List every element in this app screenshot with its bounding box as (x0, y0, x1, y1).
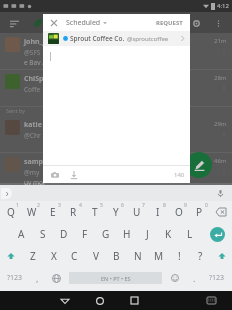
staticText: @sproutcoffee (127, 35, 169, 43)
button[interactable]: Logo (31, 16, 45, 30)
button[interactable]: Settings (189, 16, 203, 30)
staticText: REQUEST (156, 19, 183, 27)
button[interactable]: R (63, 201, 84, 223)
button[interactable]: K (158, 223, 179, 245)
button[interactable]: samp (0, 153, 232, 189)
button[interactable]: I (147, 201, 168, 223)
button[interactable]: Change language (45, 267, 67, 289)
staticText: T (92, 205, 98, 219)
staticText: 4:12 (217, 2, 229, 10)
button[interactable]: Shift (0, 245, 22, 267)
button[interactable]: REQUEST (154, 17, 185, 29)
button[interactable]: Y (105, 201, 126, 223)
button[interactable]: M (148, 245, 169, 267)
staticText: @SFS (24, 48, 41, 57)
button[interactable]: Z (22, 245, 43, 267)
button[interactable]: P (189, 201, 210, 223)
staticText: samp (24, 157, 43, 167)
button[interactable]: Home (82, 291, 117, 310)
button[interactable]: ? (190, 245, 211, 267)
staticText: uy mor (24, 178, 46, 185)
button[interactable]: ! (169, 245, 190, 267)
staticText: ChiSp (24, 74, 44, 84)
button[interactable]: Close (48, 17, 60, 29)
button[interactable]: T (84, 201, 105, 223)
button[interactable]: Emoji (164, 267, 186, 289)
staticText: P (196, 205, 203, 219)
staticText: O (175, 205, 183, 219)
staticText: G (102, 227, 110, 241)
staticText: M (154, 249, 164, 263)
staticText: . (193, 272, 196, 284)
button[interactable]: Shift right (211, 245, 232, 267)
button[interactable]: Add media (67, 168, 80, 181)
button[interactable]: J (137, 223, 158, 245)
button[interactable]: EN • PT • ES (69, 272, 162, 284)
staticText: X (51, 249, 57, 263)
staticText: katie (24, 120, 42, 130)
staticText: , (36, 272, 39, 284)
button[interactable]: Hide keyboard (194, 291, 229, 310)
staticText: F (82, 227, 88, 241)
staticText: EN • PT • ES (101, 275, 131, 282)
staticText: Z (30, 249, 36, 263)
button[interactable]: Compose (186, 152, 212, 178)
button[interactable]: U (126, 201, 147, 223)
staticText: Sent by (6, 107, 26, 114)
staticText: 3 (58, 202, 61, 209)
button[interactable]: Sprout Coffee Co. (43, 31, 190, 46)
staticText: 46m (214, 157, 227, 165)
button[interactable]: Comma (29, 267, 45, 289)
staticText: ?123 (209, 273, 225, 283)
button[interactable]: katie (0, 116, 232, 152)
button[interactable]: F (74, 223, 95, 245)
staticText: A (18, 227, 25, 241)
staticText: Coffe (24, 85, 41, 94)
staticText: ?123 (7, 273, 23, 283)
staticText: @Chr (24, 131, 41, 140)
button[interactable]: More options (211, 16, 225, 30)
staticText: Q (7, 205, 15, 219)
button[interactable]: A (11, 223, 32, 245)
button[interactable]: Enter (202, 223, 232, 245)
button[interactable]: B (106, 245, 127, 267)
staticText: N (134, 249, 142, 263)
button[interactable]: Scheduled (66, 18, 107, 28)
button[interactable]: S (32, 223, 53, 245)
staticText: ! (178, 249, 181, 263)
button[interactable]: N (127, 245, 148, 267)
staticText: R (70, 205, 77, 219)
button[interactable]: Camera (48, 168, 61, 181)
staticText: 8 (163, 202, 166, 209)
button[interactable]: O (168, 201, 189, 223)
button[interactable]: C (64, 245, 85, 267)
button[interactable]: H (116, 223, 137, 245)
button[interactable]: Backspace (210, 201, 232, 223)
button[interactable]: ?123 (202, 267, 232, 289)
staticText: J (146, 227, 149, 241)
button[interactable]: W (21, 201, 42, 223)
staticText: 6 (121, 202, 124, 209)
button[interactable]: Search (167, 16, 181, 30)
button[interactable]: G (95, 223, 116, 245)
staticText: ? (198, 249, 203, 263)
button[interactable]: Recents (117, 291, 152, 310)
button[interactable]: Back (48, 291, 82, 310)
button[interactable]: Q (0, 201, 21, 223)
button[interactable]: Voice input (214, 187, 226, 199)
button[interactable]: ChiSp (0, 70, 232, 106)
button[interactable]: V (85, 245, 106, 267)
button[interactable]: Menu (7, 16, 21, 30)
button[interactable]: john_j (0, 33, 232, 69)
button[interactable]: Expand suggestions (1, 188, 12, 199)
button[interactable]: D (53, 223, 74, 245)
staticText: B (113, 249, 120, 263)
staticText: john_j (24, 37, 45, 47)
button[interactable]: L (179, 223, 200, 245)
button[interactable]: ?123 (0, 267, 29, 289)
staticText: D (60, 227, 68, 241)
button[interactable]: E (42, 201, 63, 223)
staticText: Scheduled (66, 18, 101, 28)
button[interactable]: X (43, 245, 64, 267)
button[interactable]: Period (186, 267, 202, 289)
